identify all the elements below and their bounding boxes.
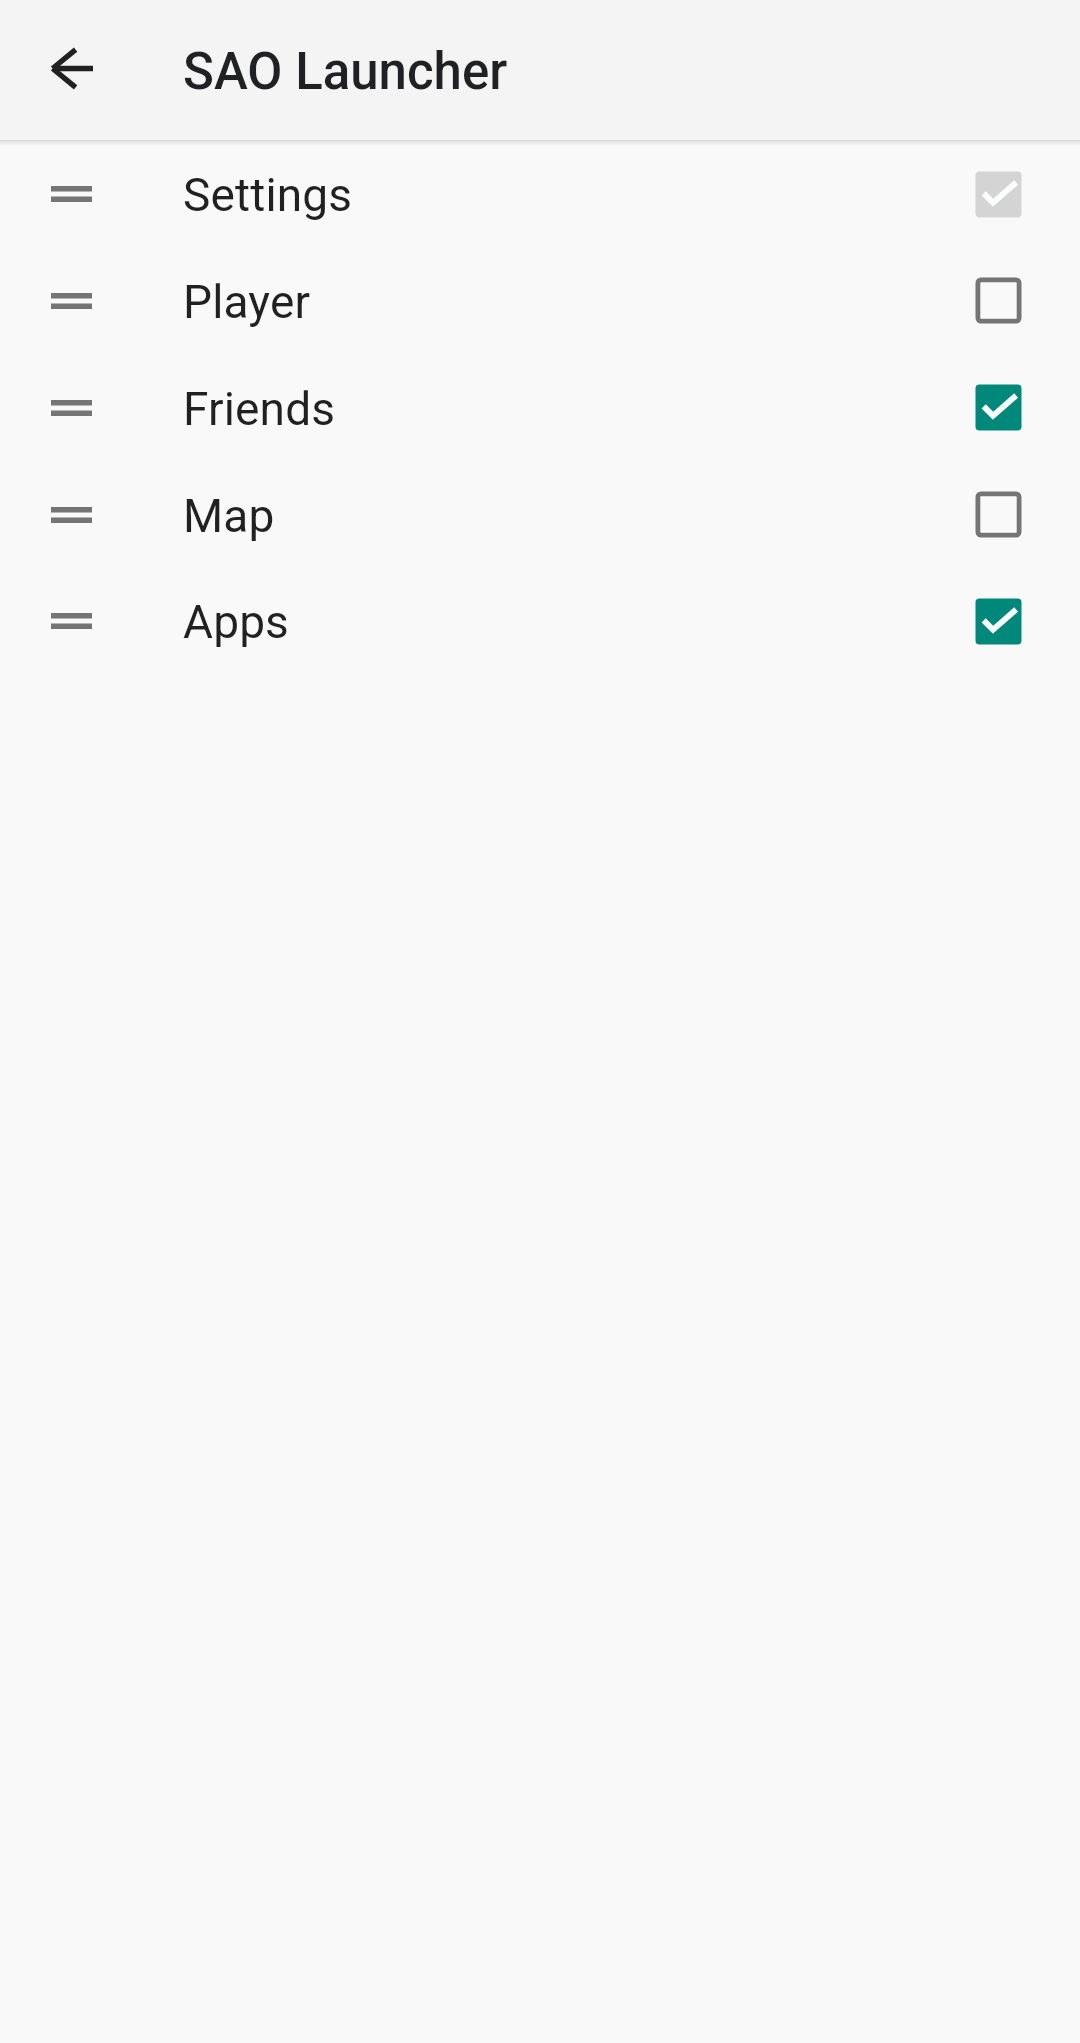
staticText: Apps [183, 595, 290, 649]
button[interactable]: Reorder Apps [51, 613, 92, 629]
button[interactable]: Reorder Apps [0, 567, 1080, 673]
button[interactable]: Reorder Friends [51, 400, 92, 416]
button[interactable]: Map, not shown [975, 460, 1080, 567]
button[interactable]: Reorder Settings [0, 140, 1080, 246]
staticText: Player [183, 275, 311, 329]
button[interactable]: Player, not shown [975, 246, 1080, 353]
staticText: Friends [183, 382, 336, 436]
button[interactable]: Navigate up [20, 16, 124, 120]
button[interactable]: Reorder Player [0, 246, 1080, 353]
button[interactable]: Reorder Map [51, 507, 92, 523]
button[interactable]: Apps, shown [975, 567, 1080, 673]
staticText: SAO Launcher [183, 42, 508, 102]
button[interactable]: Settings, always shown [975, 140, 1080, 246]
button[interactable]: Reorder Player [51, 293, 92, 309]
button[interactable]: Reorder Map [0, 460, 1080, 567]
button[interactable]: Reorder Friends [0, 353, 1080, 460]
button[interactable]: Friends, shown [975, 353, 1080, 460]
button[interactable]: Reorder Settings [51, 186, 92, 202]
staticText: Settings [183, 168, 353, 222]
staticText: Map [183, 489, 275, 543]
